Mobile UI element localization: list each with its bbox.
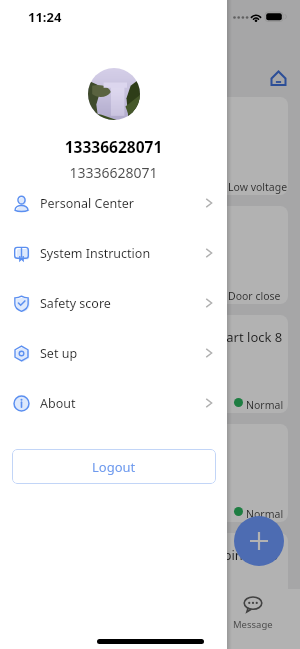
button[interactable]: Low voltage <box>12 97 288 195</box>
button[interactable]: Normal <box>12 424 288 522</box>
staticText: System Instruction <box>40 245 151 262</box>
button[interactable]: Safety score <box>0 278 227 328</box>
staticText: Normal <box>246 398 284 412</box>
staticText: About <box>40 395 76 412</box>
staticText: 11:24 <box>28 8 62 26</box>
button[interactable]: Smart lock 8 <box>12 315 288 413</box>
button[interactable]: Logout <box>12 449 216 484</box>
staticText: Set up <box>40 345 78 362</box>
button[interactable]: Set up <box>0 328 227 378</box>
button[interactable]: Personal Center <box>0 178 227 228</box>
button[interactable]: Add <box>234 516 284 566</box>
staticText: 13336628071 <box>0 136 227 157</box>
button[interactable]: System Instruction <box>0 228 227 278</box>
staticText: Logout <box>92 458 136 476</box>
staticText: Safety score <box>40 295 111 312</box>
staticText: Normal <box>246 507 284 521</box>
staticText: Message <box>233 618 273 631</box>
staticText: Cabinet t13 <box>208 546 278 564</box>
button[interactable]: About <box>0 378 227 428</box>
button[interactable]: Message <box>233 593 273 631</box>
button[interactable]: Door close <box>12 206 288 304</box>
staticText: Door close <box>228 289 281 303</box>
button[interactable]: Cabinet t13 <box>12 533 288 631</box>
staticText: Personal Center <box>40 195 134 212</box>
staticText: 13336628071 <box>0 163 227 182</box>
staticText: Low voltage <box>228 180 288 194</box>
staticText: Smart lock 8 <box>207 328 283 346</box>
